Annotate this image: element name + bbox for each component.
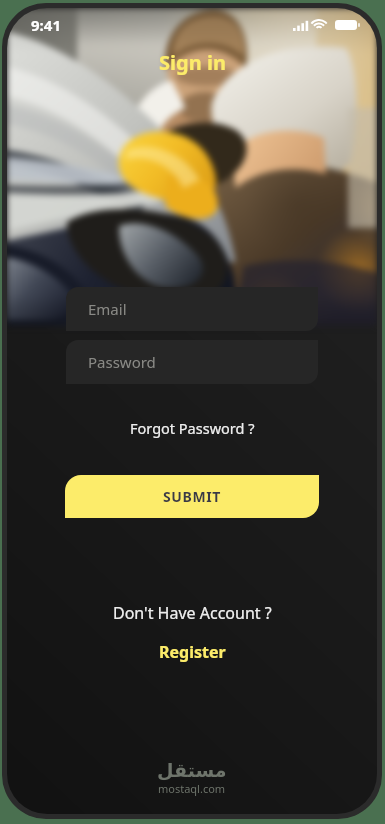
- staticText: Don't Have Account ?: [113, 602, 272, 624]
- staticText: Register: [159, 641, 226, 663]
- staticText: Sign in: [159, 49, 226, 76]
- staticText: Password: [88, 352, 156, 372]
- button[interactable]: Register: [153, 638, 232, 666]
- button[interactable]: SUBMIT: [65, 475, 319, 518]
- staticText: Email: [88, 299, 127, 319]
- button[interactable]: Forgot Password ?: [7, 417, 377, 439]
- staticText: SUBMIT: [163, 487, 221, 506]
- button[interactable]: Password: [66, 340, 318, 384]
- staticText: 9:41: [31, 15, 61, 35]
- staticText: مستقل: [157, 759, 227, 781]
- staticText: Forgot Password ?: [130, 418, 255, 438]
- button[interactable]: Email: [66, 287, 318, 331]
- staticText: mostaql.com: [158, 781, 226, 796]
